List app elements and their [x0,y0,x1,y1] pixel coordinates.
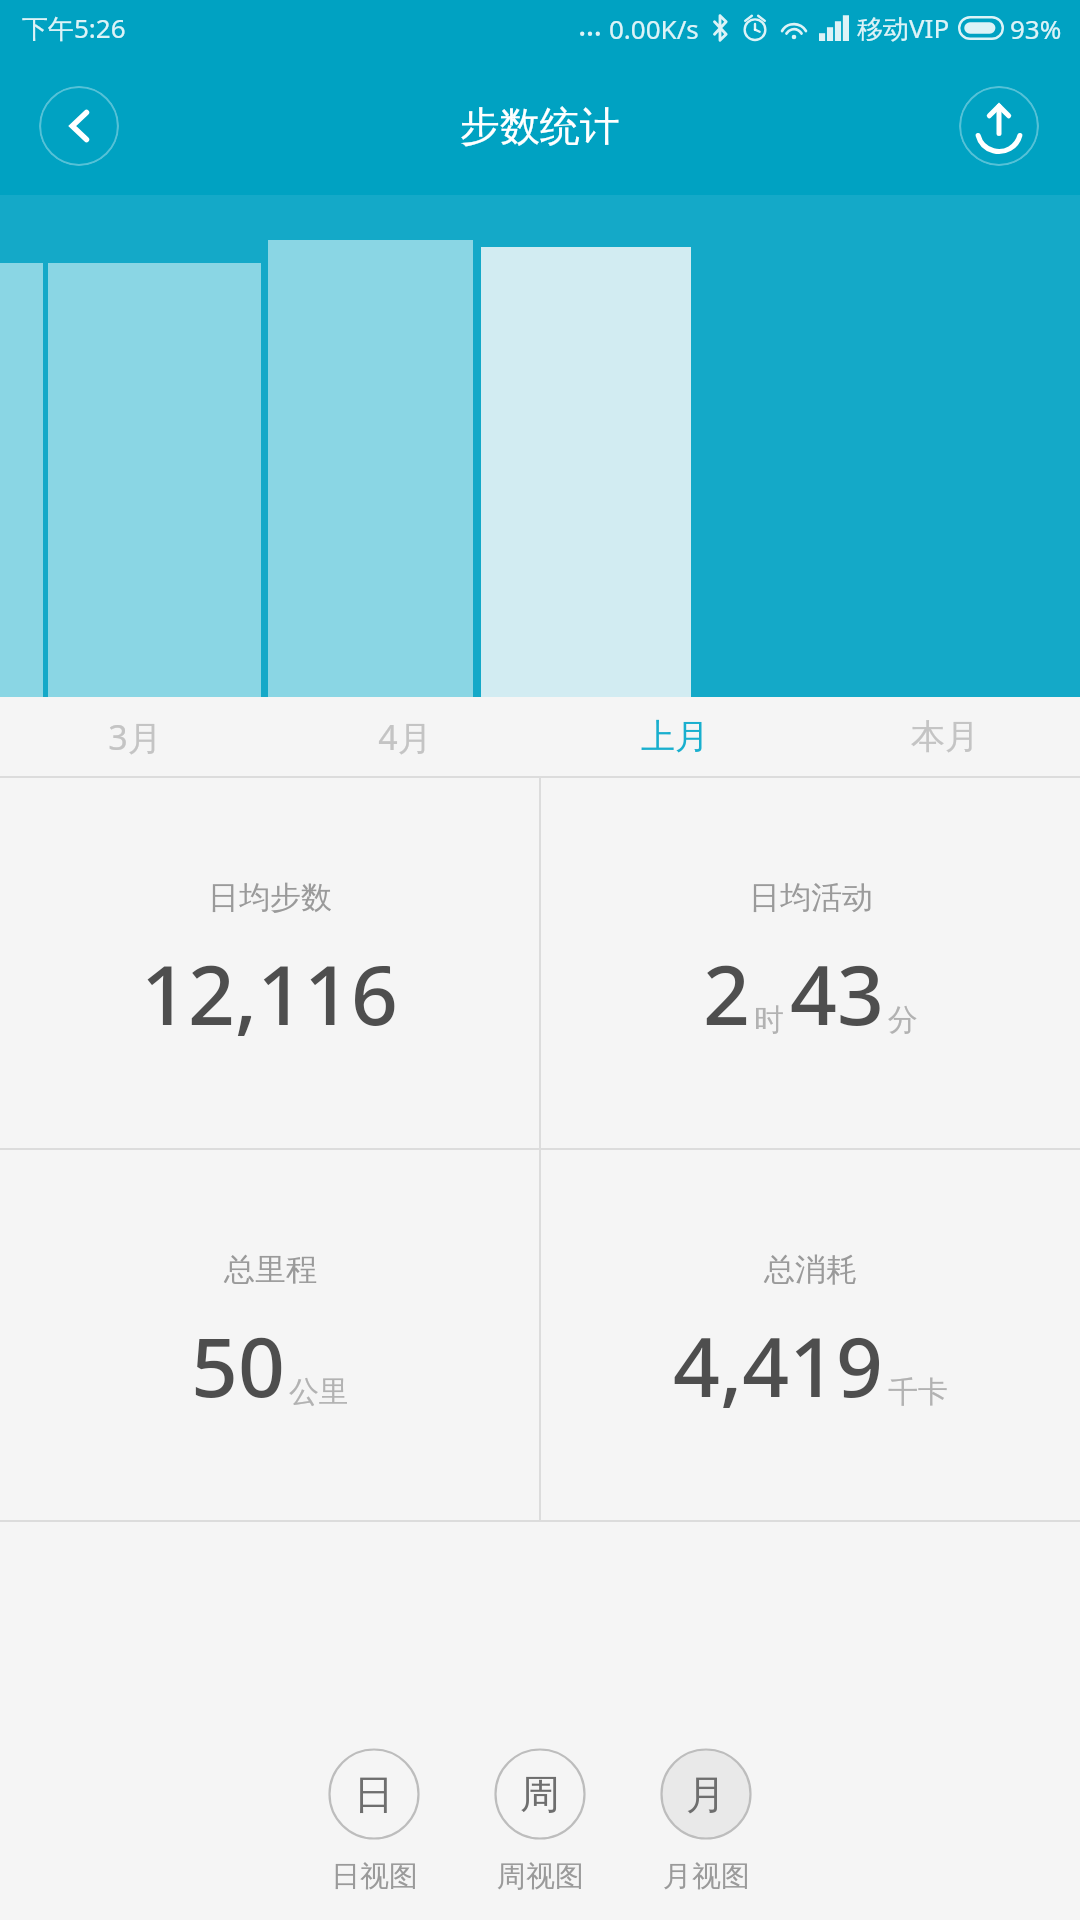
button[interactable]: 总里程 [0,1150,539,1520]
staticText: 本月 [911,715,979,758]
button[interactable]: 日均步数 [0,778,539,1148]
button[interactable]: 4月 [270,697,540,776]
staticText: 4,419 [673,1309,884,1421]
staticText: 月 [686,1769,726,1819]
staticText: 日均活动 [749,878,873,917]
staticText: 93% [1010,11,1062,46]
button[interactable]: 本月 [810,697,1080,776]
button[interactable]: Share [959,86,1039,166]
staticText: 3月 [108,714,162,760]
staticText: 周 [520,1769,560,1819]
button[interactable]: Back [39,86,119,166]
staticText: 2 [703,937,750,1049]
staticText: 总消耗 [764,1250,857,1289]
staticText: 周视图 [497,1858,584,1895]
button[interactable]: 月 [658,1720,754,1895]
staticText: 日 [354,1769,394,1819]
staticText: 日视图 [331,1858,418,1895]
staticText: 步数统计 [460,101,620,151]
staticText: 分 [888,1001,918,1039]
staticText: 日均步数 [208,878,332,917]
staticText: 移动VIP [857,10,950,46]
staticText: 时 [754,1001,784,1039]
button[interactable]: 总消耗 [541,1150,1080,1520]
button[interactable]: 上月 [540,697,810,776]
staticText: 上月 [641,715,709,758]
staticText: 千卡 [888,1373,948,1411]
button[interactable]: 周 [492,1720,588,1895]
staticText: 0.00K/s [609,11,699,46]
button[interactable]: 日 [326,1720,422,1895]
staticText: 下午5:26 [22,10,126,46]
staticText: 50 [191,1309,285,1421]
staticText: 12,116 [141,937,398,1049]
button[interactable]: 日均活动 [541,778,1080,1148]
staticText: 总里程 [224,1250,317,1289]
staticText: 月视图 [663,1858,750,1895]
staticText: 4月 [378,714,432,760]
staticText: 43 [790,937,884,1049]
staticText: 公里 [289,1373,349,1411]
button[interactable]: 3月 [0,697,270,776]
